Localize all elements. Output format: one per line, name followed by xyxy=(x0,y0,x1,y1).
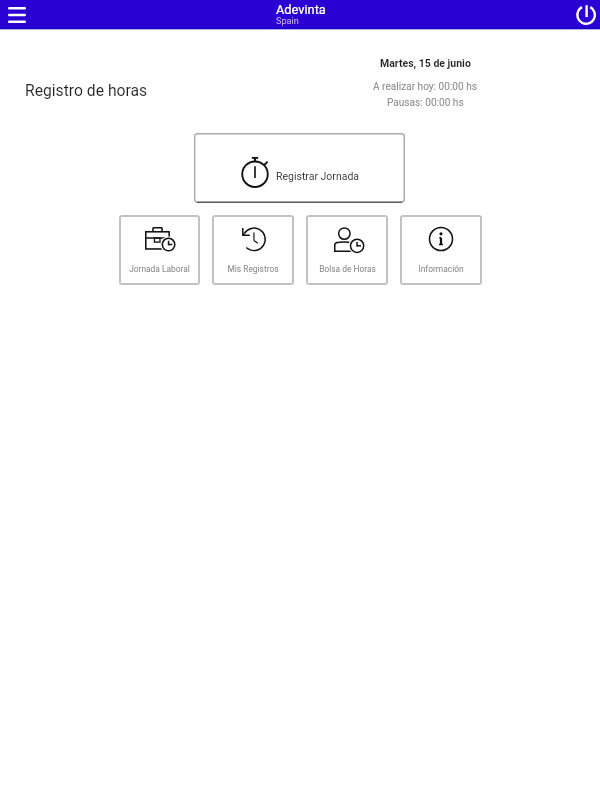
staticText: Spain xyxy=(276,16,299,27)
staticText: Pausas: 00:00 hs xyxy=(387,97,464,109)
staticText: Registro de horas xyxy=(25,81,148,99)
staticText: Jornada Laboral xyxy=(129,264,190,274)
staticText: Mis Registros xyxy=(227,264,279,274)
button[interactable]: Log out xyxy=(572,0,600,29)
staticText: A realizar hoy: 00:00 hs xyxy=(373,81,477,93)
button[interactable]: Mis Registros xyxy=(212,215,294,285)
staticText: Bolsa de Horas xyxy=(319,264,376,274)
staticText: Información xyxy=(418,264,464,274)
button[interactable]: Bolsa de Horas xyxy=(306,215,388,285)
button[interactable]: Información xyxy=(400,215,482,285)
button[interactable]: Registrar Jornada xyxy=(194,133,405,203)
staticText: Adevinta xyxy=(276,2,326,17)
button[interactable]: Jornada Laboral xyxy=(119,215,200,285)
staticText: Registrar Jornada xyxy=(276,170,360,182)
staticText: Martes, 15 de junio xyxy=(380,57,471,69)
button[interactable]: Open navigation menu xyxy=(2,0,31,29)
